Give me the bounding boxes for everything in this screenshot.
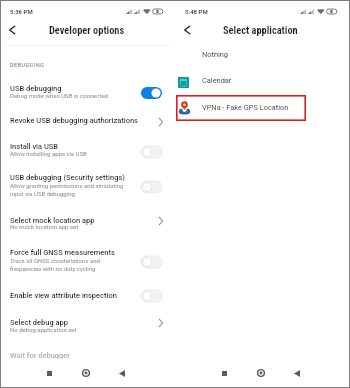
staticText: USB debugging (Security settings) [10,173,125,182]
button[interactable]: USB debugging (Security settings) [10,173,125,182]
staticText: Track all GNSS constellations and [10,257,100,264]
button[interactable]: Back [179,22,195,38]
staticText: 5:36 PM [10,8,33,15]
button[interactable]: Toggle off [141,146,162,158]
staticText: Developer options [49,24,125,36]
staticText: Select application [223,24,298,36]
staticText: Allow granting permissions and simulatin… [10,182,124,189]
button[interactable]: Toggle off [141,290,162,302]
button[interactable]: Nothing [176,45,349,67]
button[interactable]: Select debug app [10,318,68,327]
staticText: Select mock location app [10,216,95,225]
staticText: No debug application set [10,326,77,333]
staticText: Allow installing apps via USB [10,150,87,157]
staticText: USB debugging [10,84,62,93]
button[interactable]: Recents [217,366,231,380]
staticText: No mock location app set [10,223,79,230]
button[interactable]: Home [254,366,268,380]
button[interactable]: Enable view attribute inspection [10,291,117,300]
button[interactable]: Wait for debugger [10,351,71,360]
staticText: Calendar [202,76,232,85]
staticText: Install via USB [10,142,59,151]
staticText: Debug mode when USB is connected [10,92,108,99]
staticText: Force full GNSS measurements [10,248,115,257]
button[interactable]: Back [115,366,129,380]
button[interactable]: Back [290,366,304,380]
button[interactable]: Select mock location app [10,216,95,225]
button[interactable]: Toggle off [141,256,162,268]
button[interactable]: VPNa - Fake GPS Location [176,95,306,121]
staticText: 5:48 PM [185,8,208,15]
staticText: Nothing [202,50,229,59]
button[interactable]: Calendar [176,71,349,93]
staticText: Revoke USB debugging authorizations [10,116,138,125]
staticText: Select debug app [10,318,68,327]
staticText: VPNa - Fake GPS Location [202,103,289,112]
button[interactable]: Recents [42,366,56,380]
staticText: DEBUGGING [10,62,45,69]
button[interactable]: Back [4,22,20,38]
staticText: Wait for debugger [10,351,71,360]
button[interactable]: Install via USB [10,142,59,151]
button[interactable]: Force full GNSS measurements [10,248,115,257]
button[interactable]: Revoke USB debugging authorizations [10,116,138,125]
staticText: Enable view attribute inspection [10,291,117,300]
button[interactable]: Home [79,366,93,380]
staticText: input via USB debugging [10,190,75,197]
staticText: frequencies with no duty cycling [10,265,96,272]
button[interactable]: Toggle off [141,181,162,193]
button[interactable]: Toggle on [141,87,162,99]
button[interactable]: USB debugging [10,84,62,93]
